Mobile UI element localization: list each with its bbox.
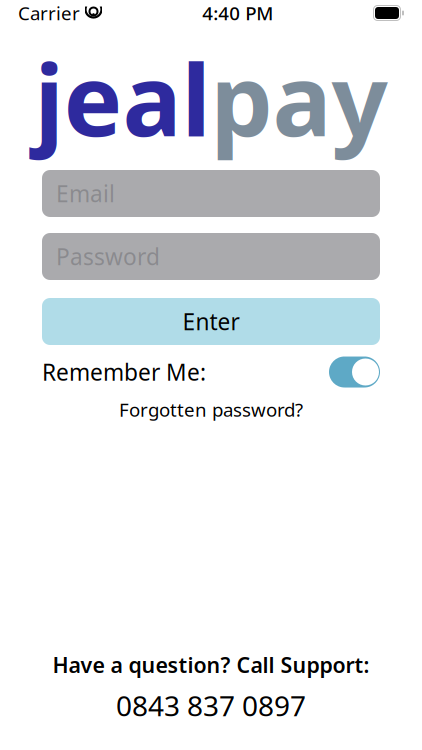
staticText: 4:40 PM: [202, 1, 273, 25]
staticText: Have a question? Call Support:: [52, 650, 369, 679]
button[interactable]: Forgotten password?: [0, 397, 422, 422]
button[interactable]: Password: [42, 233, 380, 280]
button[interactable]: Email: [42, 170, 380, 217]
staticText: Email: [56, 178, 115, 208]
staticText: Password: [56, 241, 160, 271]
staticText: 0843 837 0897: [116, 687, 306, 724]
staticText: pay: [210, 32, 387, 163]
button[interactable]: Enter: [42, 298, 380, 345]
staticText: Remember Me:: [42, 357, 206, 387]
staticText: Enter: [182, 306, 239, 336]
staticText: Forgotten password?: [119, 397, 303, 422]
button[interactable]: Remember Me: [329, 356, 380, 387]
staticText: jeal: [34, 32, 210, 163]
button[interactable]: 0843 837 0897: [116, 687, 306, 724]
staticText: Carrier: [18, 1, 80, 25]
